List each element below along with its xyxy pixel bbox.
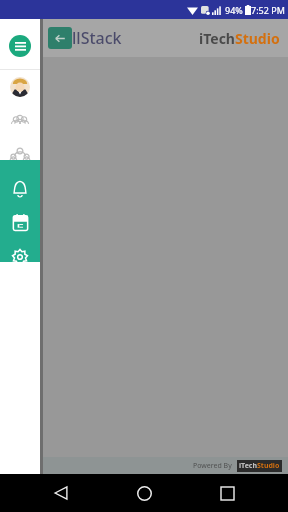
button[interactable]: Back <box>48 27 72 49</box>
button[interactable]: Back <box>39 474 83 512</box>
staticText: llStack <box>72 27 122 49</box>
button[interactable]: Recent apps <box>205 474 249 512</box>
button[interactable]: Groups <box>0 138 40 172</box>
button[interactable]: Contacts <box>0 104 40 138</box>
button[interactable]: Profile <box>0 70 40 104</box>
staticText: iTechStudio <box>239 461 280 471</box>
staticText: iTechStudio <box>199 29 280 48</box>
staticText: 94% <box>225 4 243 16</box>
button[interactable]: Notifications <box>0 172 40 206</box>
staticText: 7:52 PM <box>251 4 285 16</box>
button[interactable]: Open menu <box>0 27 40 65</box>
button[interactable]: Home <box>122 474 166 512</box>
button[interactable]: Calendar <box>0 206 40 240</box>
staticText: Powered By <box>193 461 232 471</box>
button[interactable]: Settings <box>0 240 40 274</box>
